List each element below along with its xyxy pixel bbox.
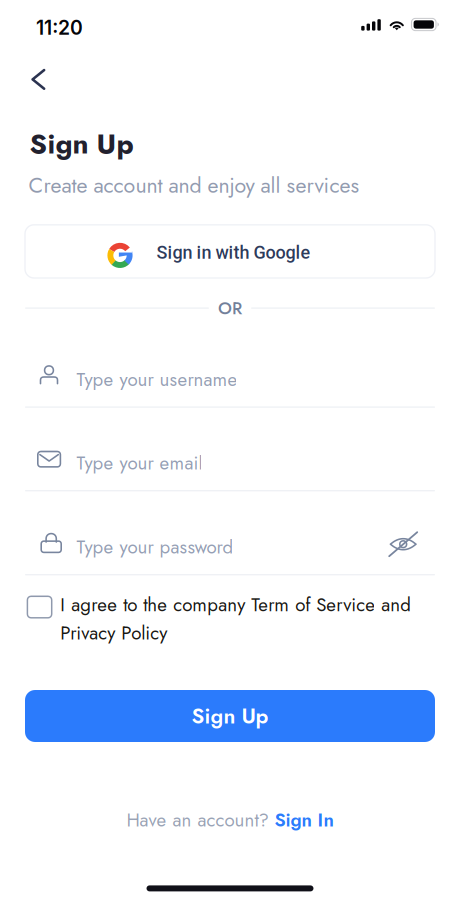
- staticText: Type your email: [76, 450, 202, 477]
- button[interactable]: Have an account?: [0, 806, 460, 834]
- button[interactable]: Type your username: [25, 362, 435, 408]
- staticText: OR: [218, 296, 242, 321]
- button[interactable]: Sign in with Google: [25, 225, 435, 278]
- staticText: I agree to the company Term of Service a…: [60, 591, 411, 646]
- button[interactable]: Type your password: [25, 530, 435, 576]
- button[interactable]: Sign Up: [25, 690, 435, 742]
- button[interactable]: I agree to the terms: [27, 596, 52, 618]
- staticText: Sign Up: [30, 124, 134, 164]
- staticText: Sign In: [274, 806, 333, 833]
- staticText: 11:20: [36, 16, 83, 39]
- staticText: Type your password: [76, 534, 233, 561]
- staticText: Sign in with Google: [157, 242, 311, 263]
- staticText: Have an account?: [126, 806, 268, 833]
- staticText: Type your username: [76, 366, 237, 393]
- staticText: Create account and enjoy all services: [29, 170, 360, 201]
- staticText: Sign Up: [191, 701, 268, 731]
- button[interactable]: Back: [6, 57, 72, 103]
- button[interactable]: Type your email: [25, 446, 435, 492]
